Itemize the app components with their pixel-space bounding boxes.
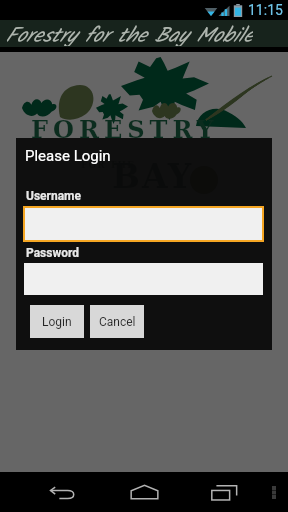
staticText: FORESTRY — [31, 115, 219, 143]
staticText: Login — [42, 315, 72, 329]
button[interactable]: Back — [24, 472, 102, 512]
button[interactable]: Forestry for the Bay Mobile — [0, 20, 288, 47]
button[interactable]: Home — [105, 472, 183, 512]
staticText: Forestry for the Bay Mobile — [5, 20, 253, 46]
staticText: FOR THE — [81, 160, 135, 171]
staticText: Cancel — [99, 315, 136, 329]
staticText: Username — [26, 189, 81, 203]
button[interactable]: Cancel — [90, 305, 144, 338]
staticText: Please Login — [25, 147, 111, 165]
staticText: Password — [26, 246, 80, 260]
button[interactable]: More options — [260, 472, 288, 512]
button[interactable]: Recent apps — [185, 472, 263, 512]
staticText: 11:15 — [248, 2, 283, 18]
button[interactable]: Login — [30, 305, 84, 338]
